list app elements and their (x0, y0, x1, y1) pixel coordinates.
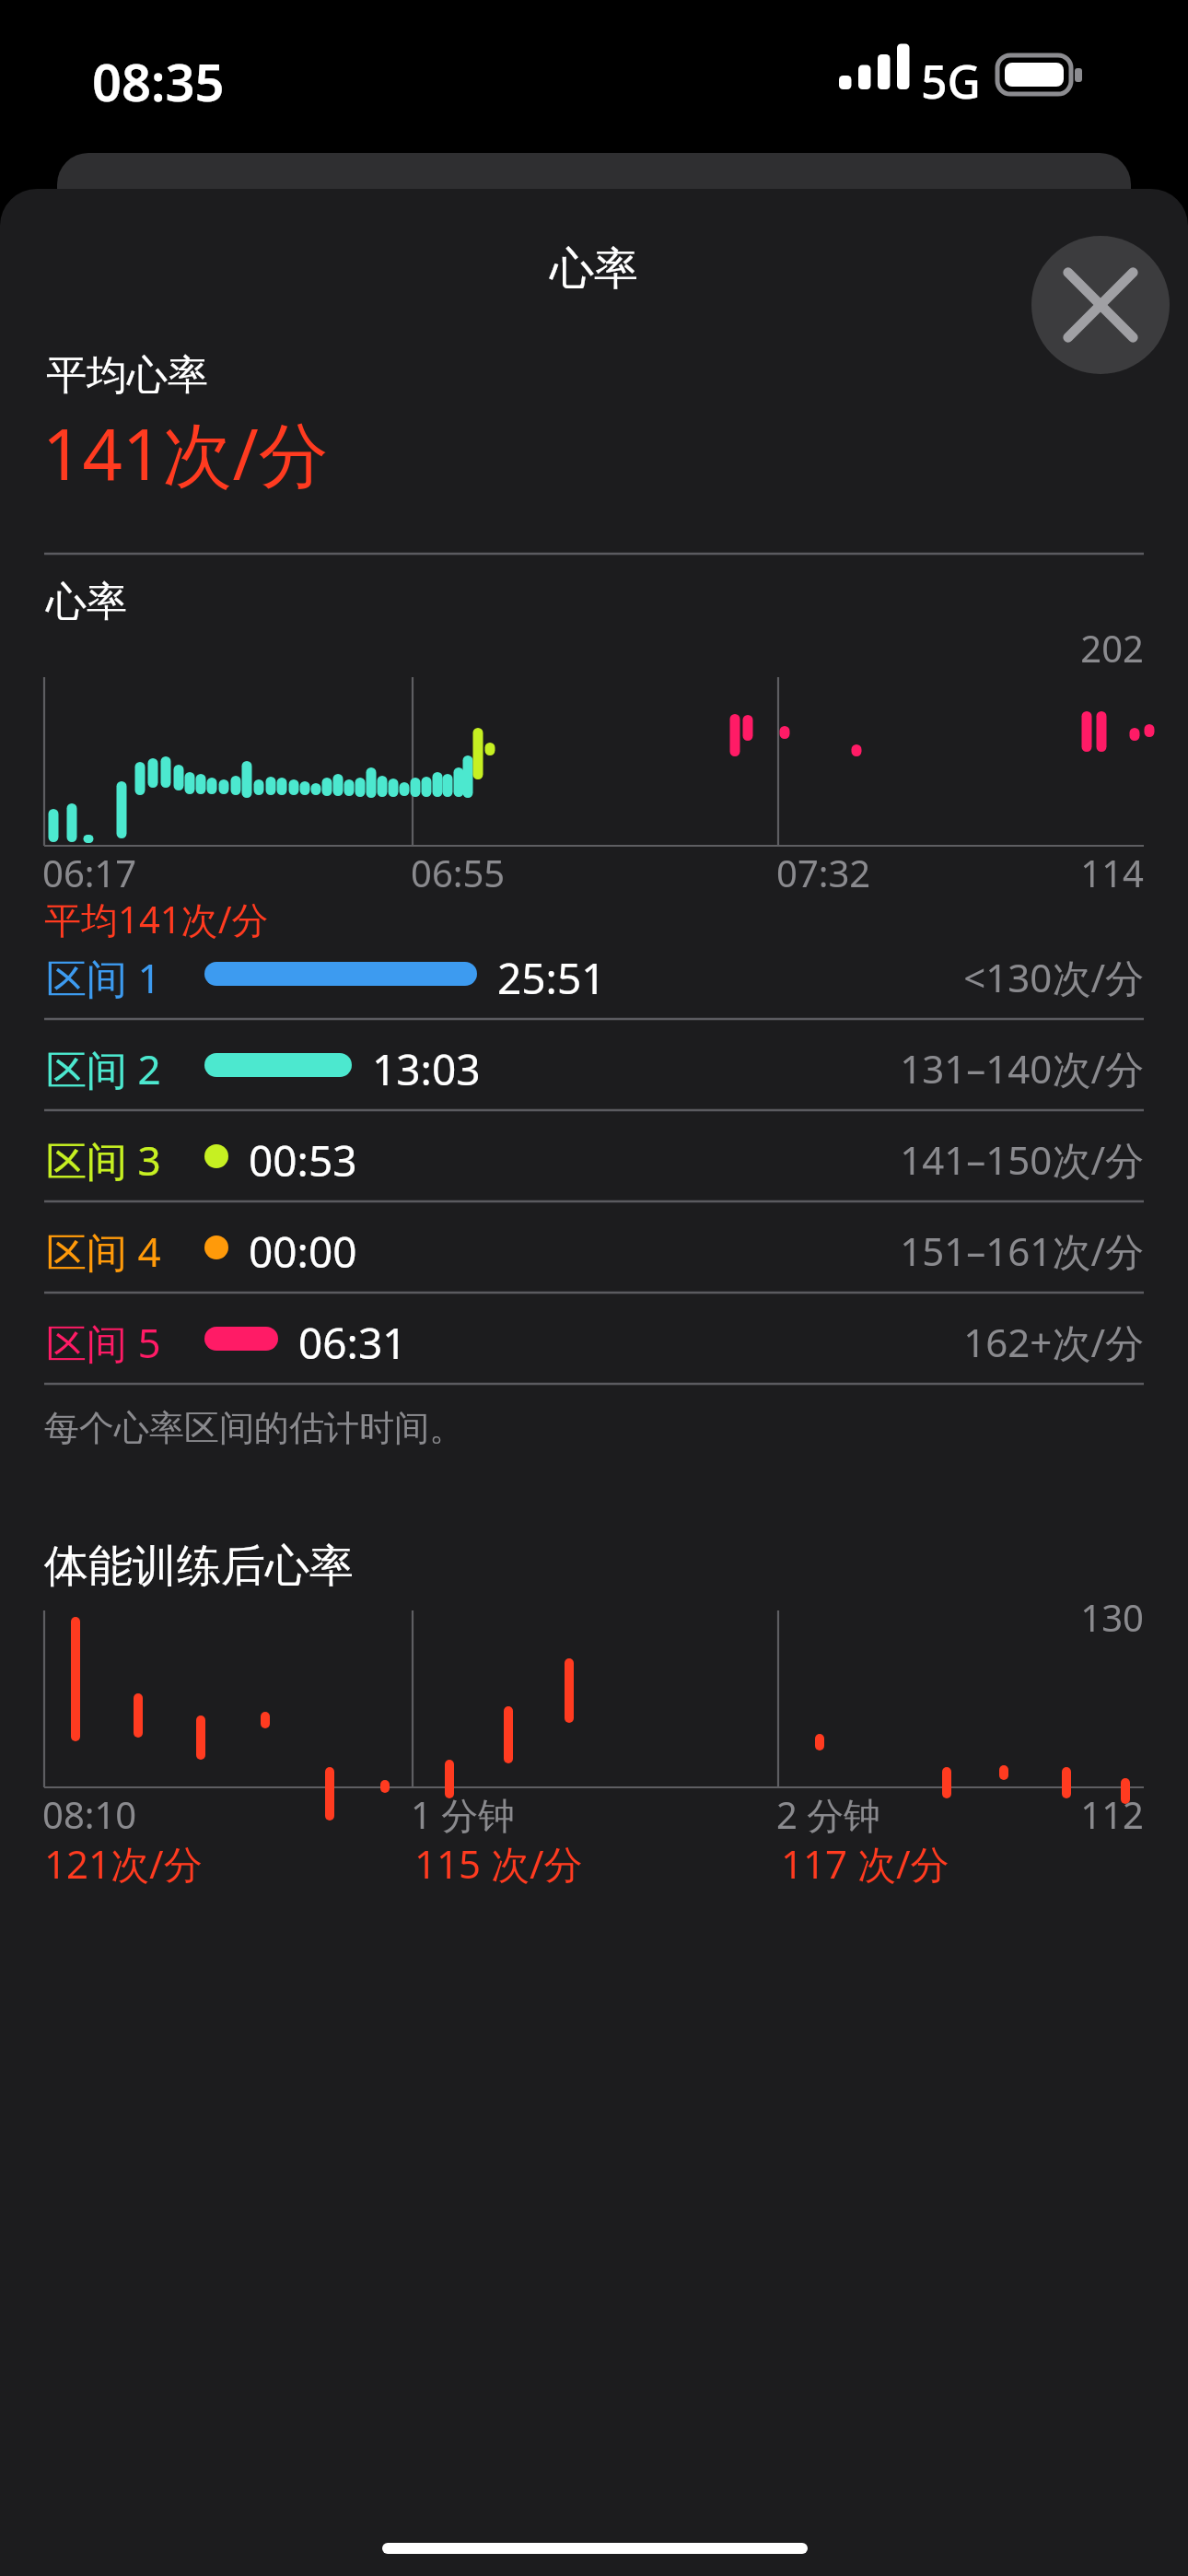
staticText: 06:55 (411, 848, 506, 897)
staticText: 130 (0, 1592, 1144, 1642)
staticText: 08:10 (42, 1789, 137, 1839)
staticText: 202 (0, 623, 1144, 673)
staticText: 每个心率区间的估计时间。 (44, 1406, 464, 1450)
staticText: 区间 2 (46, 1041, 161, 1096)
staticText: 112 (0, 1789, 1144, 1839)
button[interactable] (0, 1294, 1188, 1385)
staticText: 体能训练后心率 (44, 1539, 354, 1594)
staticText: 13:03 (372, 1040, 481, 1098)
staticText: 131–140次/分 (0, 1042, 1144, 1095)
staticText: 114 (0, 848, 1144, 897)
staticText: 平均141次/分 (44, 894, 269, 944)
staticText: 区间 3 (46, 1132, 161, 1188)
staticText: 07:32 (776, 848, 871, 897)
staticText: 151–161次/分 (0, 1224, 1144, 1277)
staticText: 141次/分 (42, 405, 329, 501)
staticText: 121次/分 (44, 1837, 203, 1890)
button[interactable] (0, 1111, 1188, 1202)
staticText: 08:35 (92, 46, 225, 116)
button[interactable]: 关闭 (1031, 236, 1170, 374)
staticText: 141–150次/分 (0, 1133, 1144, 1186)
staticText: 25:51 (497, 949, 606, 1007)
staticText: 117 次/分 (781, 1837, 949, 1890)
button[interactable] (0, 1202, 1188, 1294)
staticText: 115 次/分 (414, 1837, 583, 1890)
staticText: 00:53 (249, 1131, 357, 1189)
staticText: 心率 (0, 241, 1188, 297)
staticText: 区间 5 (46, 1315, 161, 1370)
staticText: 心率 (46, 577, 127, 627)
staticText: 5G (921, 50, 981, 112)
staticText: 00:00 (249, 1223, 357, 1281)
staticText: 06:31 (298, 1314, 407, 1372)
button[interactable] (0, 929, 1188, 1020)
staticText: 平均心率 (46, 350, 208, 401)
button[interactable] (0, 1020, 1188, 1111)
staticText: 区间 1 (46, 950, 161, 1005)
staticText: 162+次/分 (0, 1316, 1144, 1368)
staticText: 06:17 (42, 848, 137, 897)
staticText: <130次/分 (0, 951, 1144, 1003)
staticText: 1 分钟 (411, 1789, 516, 1840)
staticText: 区间 4 (46, 1224, 161, 1279)
staticText: 2 分钟 (776, 1789, 881, 1840)
